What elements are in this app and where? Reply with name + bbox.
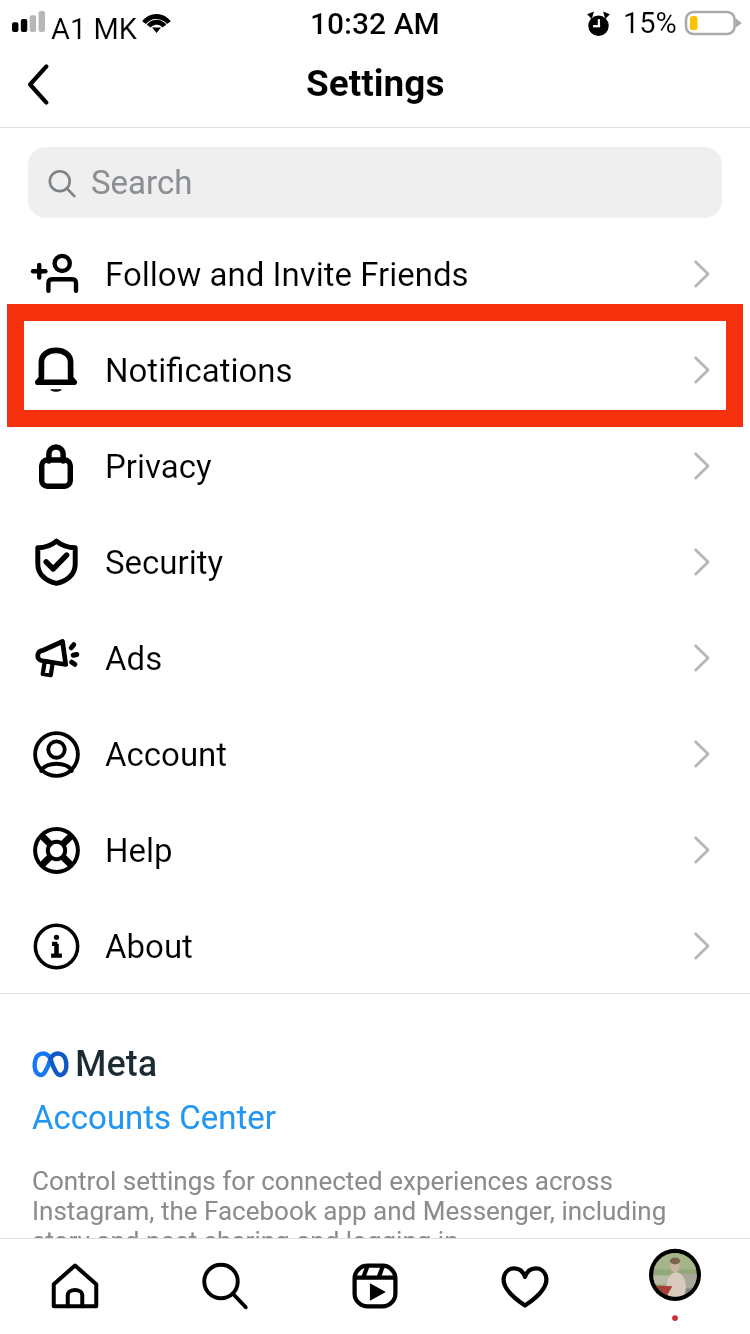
button[interactable]: Account <box>0 706 750 802</box>
button[interactable]: Reels <box>300 1238 450 1334</box>
staticText: Control settings for connected experienc… <box>32 1166 704 1256</box>
staticText: Account <box>105 735 228 774</box>
staticText: 10:32 AM <box>310 6 440 41</box>
button[interactable]: About <box>0 898 750 994</box>
button[interactable]: Security <box>0 514 750 610</box>
staticText: About <box>105 927 193 966</box>
staticText: Settings <box>306 62 445 105</box>
button[interactable]: Follow and Invite Friends <box>0 226 750 322</box>
button[interactable]: Ads <box>0 610 750 706</box>
staticText: Follow and Invite Friends <box>105 255 469 294</box>
button[interactable]: Search <box>28 147 722 218</box>
staticText: Ads <box>105 639 163 678</box>
staticText: Accounts Center <box>32 1098 277 1137</box>
button[interactable]: Accounts Center <box>32 1098 277 1137</box>
staticText: A1 MK <box>51 12 137 46</box>
button[interactable]: Help <box>0 802 750 898</box>
button[interactable]: Search <box>150 1238 300 1334</box>
staticText: Notifications <box>105 351 293 390</box>
staticText: Search <box>91 163 193 202</box>
button[interactable]: Profile <box>600 1238 750 1334</box>
staticText: 15% <box>623 6 677 40</box>
button[interactable]: Privacy <box>0 418 750 514</box>
staticText: Help <box>105 831 173 870</box>
staticText: Security <box>105 543 224 582</box>
staticText: Meta <box>75 1043 158 1085</box>
staticText: Privacy <box>105 447 212 486</box>
button[interactable]: Back <box>7 53 69 115</box>
button[interactable]: Notifications <box>0 322 750 418</box>
button[interactable]: Home <box>0 1238 150 1334</box>
button[interactable]: Activity <box>450 1238 600 1334</box>
